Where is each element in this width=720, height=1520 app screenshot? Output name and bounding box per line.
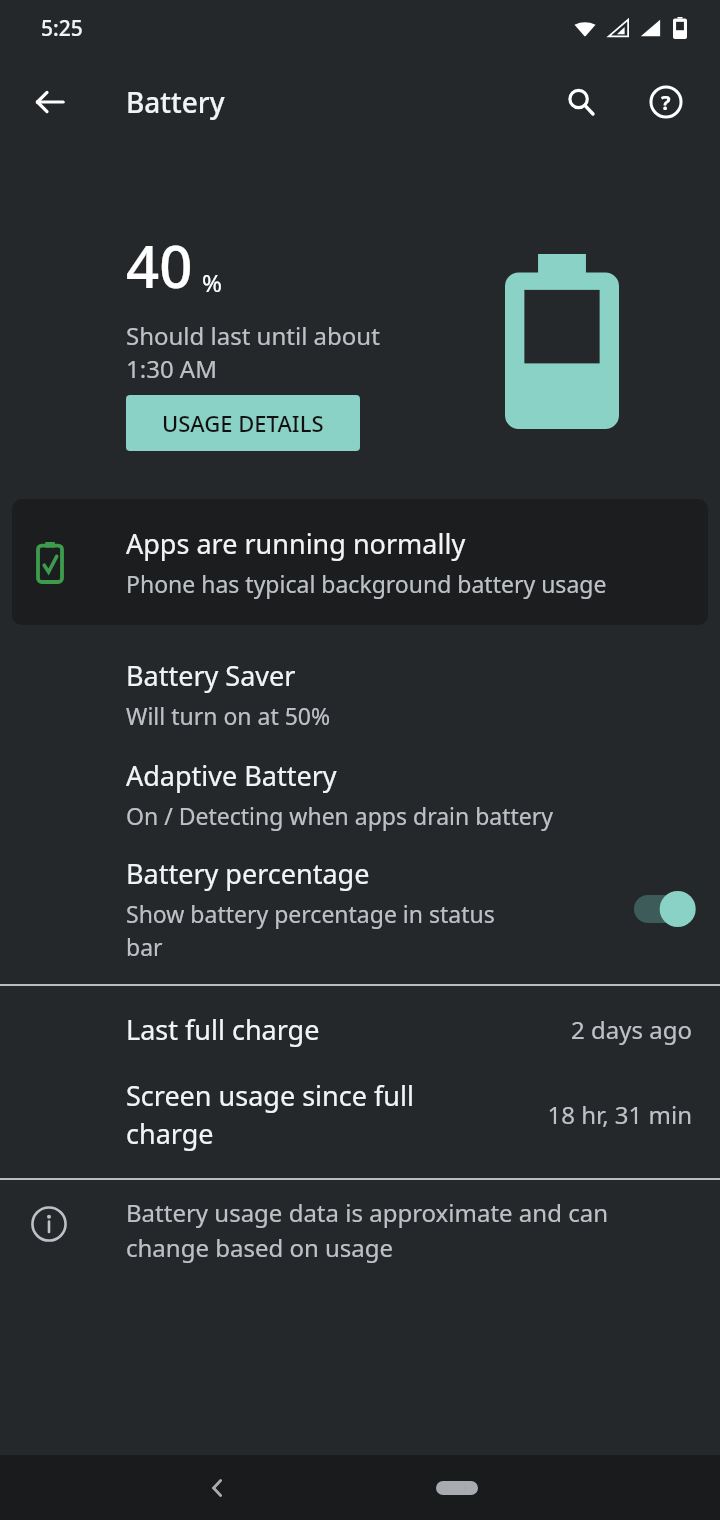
staticText: 18 hr, 31 min — [547, 1098, 692, 1131]
staticText: 5:25 — [41, 14, 83, 43]
staticText: Should last until about 1:30 AM — [126, 319, 380, 385]
button[interactable]: USAGE DETAILS — [126, 395, 360, 451]
button[interactable]: Screen usage since full charge — [0, 1077, 720, 1152]
button[interactable]: Last full charge — [0, 1011, 720, 1048]
staticText: Battery usage data is approximate and ca… — [126, 1196, 608, 1264]
button[interactable]: Battery percentage — [0, 855, 720, 963]
button[interactable]: Battery percentage toggle — [634, 887, 694, 931]
button[interactable]: Adaptive Battery — [0, 757, 720, 831]
staticText: USAGE DETAILS — [162, 408, 324, 438]
staticText: Adaptive Battery — [126, 757, 337, 794]
button[interactable]: Home — [436, 1481, 478, 1495]
button[interactable]: Battery Saver — [0, 657, 720, 731]
staticText: Show battery percentage in status bar — [126, 898, 495, 963]
staticText: Battery percentage — [126, 855, 370, 892]
staticText: On / Detecting when apps drain battery — [126, 800, 554, 831]
button[interactable]: Back — [195, 1465, 241, 1511]
staticText: 2 days ago — [571, 1013, 692, 1046]
button[interactable]: Search — [553, 74, 609, 130]
button[interactable]: Apps are running normally — [12, 499, 708, 625]
staticText: Will turn on at 50% — [126, 700, 331, 731]
button[interactable]: Back — [22, 74, 78, 130]
staticText: Last full charge — [126, 1011, 559, 1048]
staticText: Phone has typical background battery usa… — [126, 568, 607, 599]
staticText: % — [202, 266, 222, 299]
staticText: Apps are running normally — [126, 525, 466, 562]
staticText: Battery Saver — [126, 657, 296, 694]
staticText: Battery — [126, 83, 225, 121]
staticText: ? — [661, 89, 671, 116]
staticText: 40 — [126, 226, 193, 305]
staticText: Screen usage since full charge — [126, 1077, 535, 1152]
button[interactable]: Help — [638, 74, 694, 130]
